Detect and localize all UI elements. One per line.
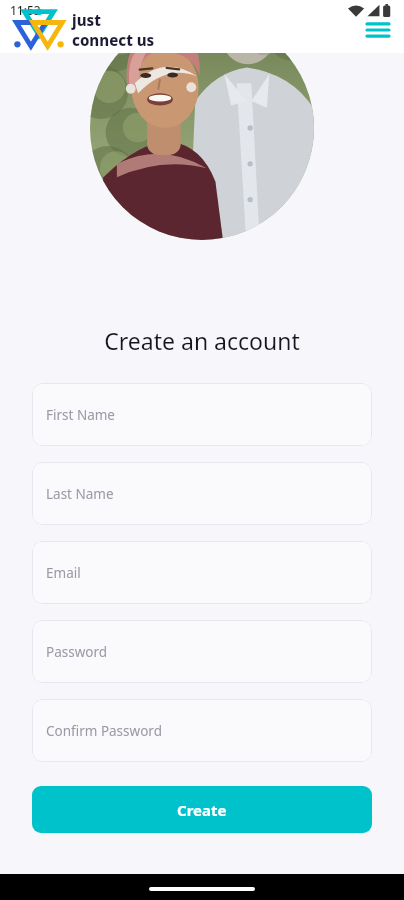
button[interactable]: Email: [32, 541, 372, 604]
staticText: Password: [46, 643, 108, 661]
button[interactable]: First Name: [32, 383, 372, 446]
button[interactable]: Create: [32, 786, 372, 833]
staticText: Last Name: [46, 485, 114, 503]
button[interactable]: Confirm Password: [32, 699, 372, 762]
button[interactable]: Last Name: [32, 462, 372, 525]
staticText: 11:53: [10, 2, 41, 18]
button[interactable]: Open menu: [362, 14, 394, 46]
staticText: Confirm Password: [46, 722, 162, 740]
button[interactable]: just: [8, 8, 155, 52]
staticText: Email: [46, 564, 81, 582]
staticText: connect us: [72, 30, 155, 50]
button[interactable]: Password: [32, 620, 372, 683]
staticText: just: [72, 10, 101, 30]
staticText: First Name: [46, 406, 115, 424]
staticText: Create an account: [104, 325, 300, 356]
staticText: Create: [177, 800, 227, 820]
